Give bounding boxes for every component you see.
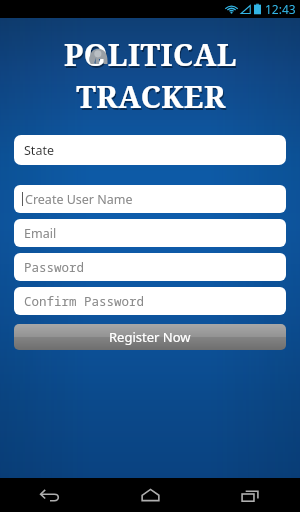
staticText: POLITICAL: [65, 36, 238, 77]
button[interactable]: Password: [14, 253, 286, 281]
button[interactable]: Confirm Password: [14, 287, 286, 315]
staticText: TRACKER: [77, 78, 227, 119]
button[interactable]: Register Now: [14, 324, 286, 350]
button[interactable]: Home: [100, 478, 200, 512]
staticText: Confirm Password: [24, 293, 145, 310]
button[interactable]: Email: [14, 219, 286, 247]
button[interactable]: Create User Name: [14, 185, 286, 213]
staticText: TRACKER: [76, 76, 226, 117]
button[interactable]: Back: [0, 478, 100, 512]
button[interactable]: State: [14, 135, 286, 165]
staticText: Register Now: [109, 328, 191, 346]
staticText: State: [24, 142, 54, 159]
staticText: POLITICAL: [64, 34, 237, 75]
staticText: Password: [24, 259, 85, 276]
staticText: 12:43: [265, 1, 296, 17]
staticText: Create User Name: [25, 191, 133, 208]
staticText: Email: [24, 225, 57, 242]
button[interactable]: Recent apps: [200, 478, 300, 512]
